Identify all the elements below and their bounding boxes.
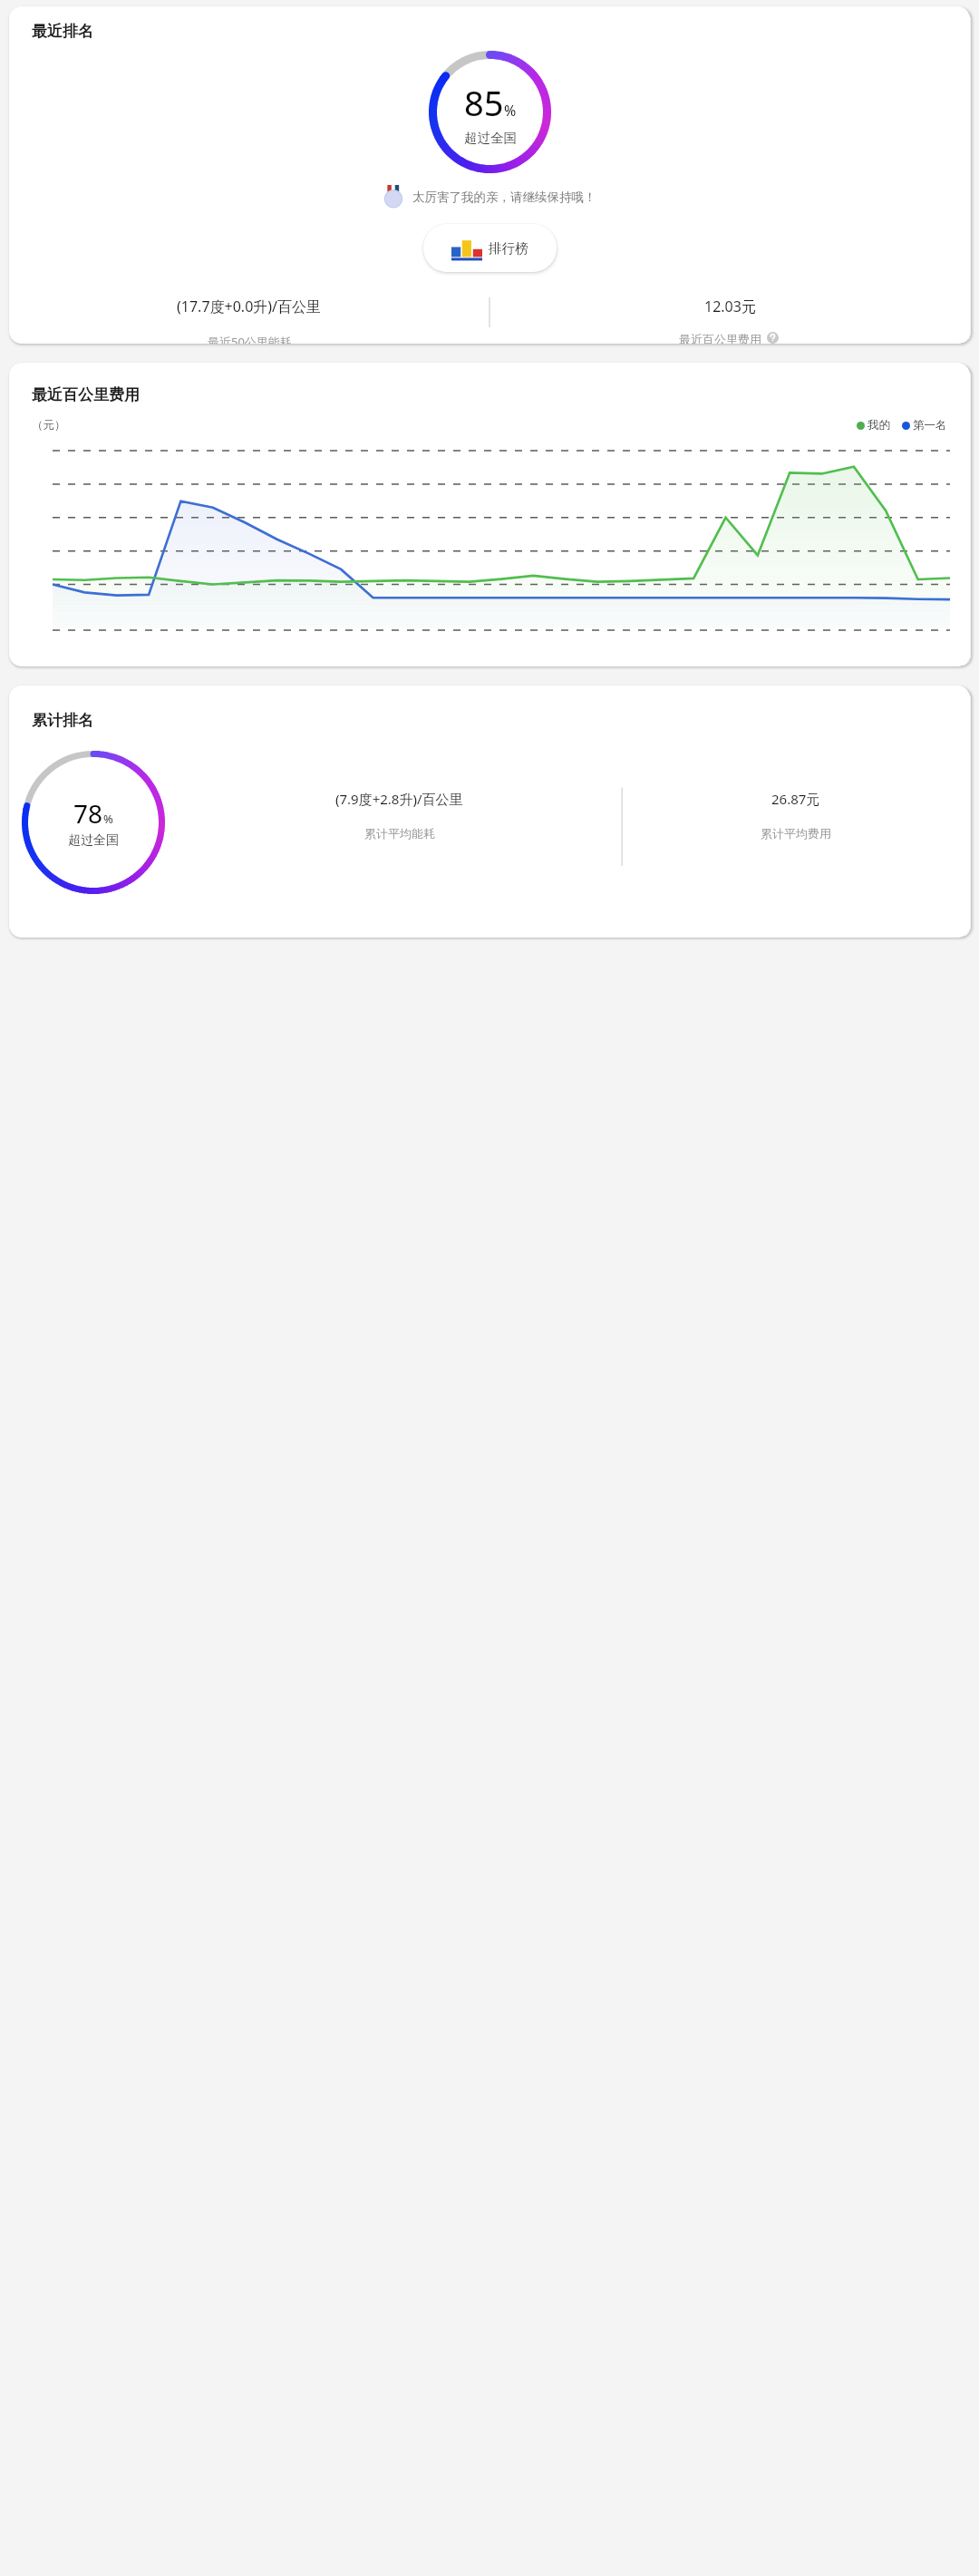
staticText: 超过全国 (68, 832, 119, 849)
staticText: (7.9度+2.8升)/百公里 (335, 790, 463, 808)
button[interactable]: 帮助 (767, 332, 781, 344)
staticText: 26.87元 (771, 790, 820, 808)
staticText: 最近百公里费用 (32, 385, 140, 404)
staticText: 78 (73, 796, 103, 831)
staticText: 12.03元 (704, 296, 756, 316)
staticText: 累计平均费用 (761, 826, 831, 841)
staticText: 最近百公里费用 (679, 332, 761, 344)
staticText: 超过全国 (464, 130, 517, 146)
staticText: 累计排名 (32, 711, 93, 730)
staticText: 85 (464, 79, 504, 126)
staticText: 最近排名 (32, 22, 93, 41)
staticText: 太厉害了我的亲，请继续保持哦！ (412, 190, 596, 205)
staticText: （元） (32, 418, 66, 433)
button[interactable]: 排行榜 (423, 224, 557, 272)
staticText: 第一名 (913, 418, 947, 433)
staticText: % (504, 101, 517, 121)
staticText: 最近50公里能耗 (208, 334, 292, 344)
staticText: 我的 (868, 418, 890, 433)
staticText: 排行榜 (489, 240, 528, 257)
staticText: 累计平均能耗 (364, 826, 435, 841)
staticText: (17.7度+0.0升)/百公里 (177, 296, 322, 316)
staticText: % (103, 811, 113, 827)
